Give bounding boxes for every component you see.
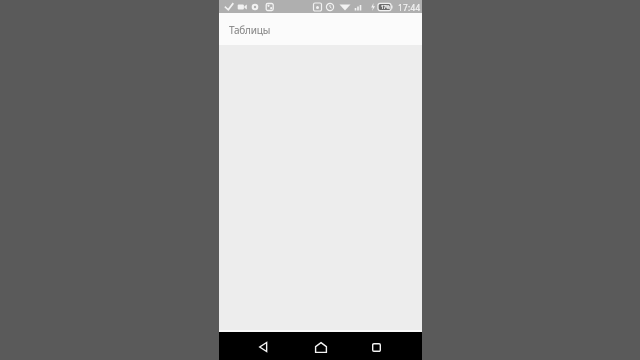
button[interactable] (246, 332, 281, 360)
staticText: 17:44 (398, 2, 421, 13)
staticText: Таблицы (229, 23, 271, 37)
button[interactable]: Таблицы (219, 13, 422, 45)
button[interactable] (303, 332, 338, 360)
staticText: 17% (381, 4, 390, 10)
button[interactable] (359, 332, 394, 360)
